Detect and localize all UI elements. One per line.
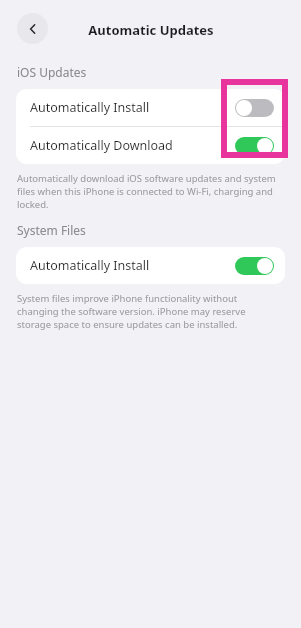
button[interactable]: Automatically Download [16,127,285,164]
button[interactable] [235,137,274,155]
staticText: Automatically download iOS software upda… [17,172,277,211]
staticText: System Files [17,222,86,238]
button[interactable]: Automatically Install [16,89,285,126]
staticText: System files improve iPhone functionalit… [17,292,277,331]
button[interactable]: Automatically Install [16,247,285,284]
staticText: Automatically Install [30,99,150,116]
staticText: iOS Updates [17,64,87,80]
button[interactable]: Back [17,13,48,44]
staticText: Automatically Install [30,257,150,274]
staticText: Automatically Download [30,137,173,154]
button[interactable] [235,257,274,275]
button[interactable] [235,99,274,117]
staticText: Automatic Updates [88,21,214,39]
